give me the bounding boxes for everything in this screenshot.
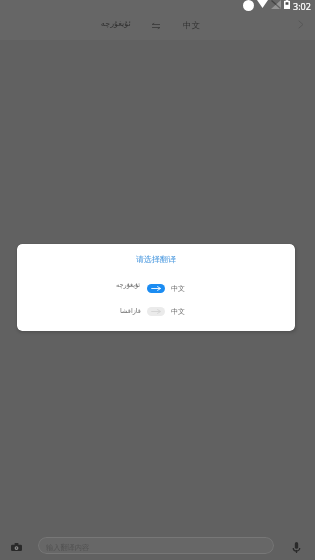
button[interactable]: ئۇيغۇرچە	[101, 19, 131, 28]
button[interactable]: Camera translate	[7, 538, 25, 556]
staticText: 输入翻译内容	[46, 543, 90, 552]
staticText: 请选择翻译	[136, 254, 176, 264]
staticText: 中文	[171, 284, 185, 293]
button[interactable]: 中文	[183, 20, 200, 31]
staticText: 3:02	[293, 0, 311, 12]
button[interactable]: Swap languages	[148, 20, 164, 32]
staticText: ئۇيغۇرچە	[116, 281, 141, 289]
button[interactable]: Voice input	[287, 538, 305, 556]
staticText: 中文	[171, 307, 185, 316]
button[interactable]: ئۇيغۇرچە	[101, 281, 211, 295]
button[interactable]: 输入翻译内容	[38, 537, 274, 554]
staticText: قازاقشا	[120, 307, 141, 315]
button[interactable]: قازاقشا	[101, 304, 211, 318]
